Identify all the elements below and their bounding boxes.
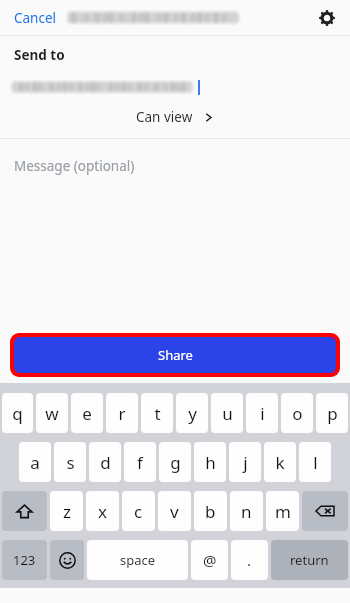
button[interactable]: t — [141, 393, 173, 433]
staticText: y — [188, 402, 197, 425]
staticText: o — [292, 402, 303, 425]
staticText: s — [66, 451, 75, 474]
button[interactable]: s — [54, 442, 86, 482]
staticText: n — [241, 500, 252, 523]
button[interactable]: x — [86, 491, 119, 531]
staticText: r — [118, 402, 126, 425]
button[interactable]: w — [36, 393, 68, 433]
button[interactable]: g — [159, 442, 191, 482]
staticText: Message (optional) — [14, 157, 135, 175]
button[interactable]: c — [122, 491, 155, 531]
button[interactable]: b — [194, 491, 227, 531]
staticText: m — [275, 500, 291, 523]
staticText: f — [137, 451, 143, 474]
button[interactable]: n — [230, 491, 263, 531]
button[interactable]: space — [87, 540, 188, 580]
button[interactable]: o — [281, 393, 313, 433]
button[interactable]: a — [19, 442, 51, 482]
button[interactable]: u — [211, 393, 243, 433]
staticText: c — [134, 500, 143, 523]
staticText: l — [313, 451, 318, 474]
button[interactable]: h — [194, 442, 226, 482]
button[interactable]: j — [229, 442, 261, 482]
staticText: Send to — [14, 46, 65, 64]
staticText: @ — [203, 550, 217, 570]
button[interactable]: . — [231, 540, 268, 580]
button[interactable]: i — [246, 393, 278, 433]
staticText: Share — [158, 346, 193, 364]
staticText: 123 — [13, 551, 36, 569]
button[interactable]: Cancel — [8, 5, 63, 31]
button[interactable]: Backspace — [302, 491, 348, 531]
staticText: return — [290, 551, 329, 569]
button[interactable]: m — [266, 491, 299, 531]
staticText: space — [120, 551, 156, 569]
button[interactable]: q — [2, 393, 33, 433]
button[interactable]: l — [299, 442, 331, 482]
button[interactable]: Can view — [128, 104, 222, 130]
staticText: j — [243, 451, 248, 474]
staticText: p — [327, 402, 338, 425]
button[interactable]: return — [271, 540, 348, 580]
button[interactable]: k — [264, 442, 296, 482]
staticText: v — [170, 500, 179, 523]
button[interactable]: @ — [191, 540, 228, 580]
staticText: t — [154, 402, 161, 425]
staticText: e — [82, 402, 92, 425]
button[interactable]: y — [176, 393, 208, 433]
button[interactable]: Message (optional) — [0, 139, 350, 327]
staticText: w — [45, 402, 59, 425]
staticText: a — [30, 451, 40, 474]
button[interactable]: d — [89, 442, 121, 482]
staticText: k — [275, 451, 285, 474]
button[interactable]: v — [158, 491, 191, 531]
button[interactable]: Settings — [314, 5, 340, 31]
staticText: i — [260, 402, 265, 425]
button[interactable]: f — [124, 442, 156, 482]
button[interactable]: Share — [14, 337, 336, 373]
staticText: b — [205, 500, 216, 523]
button[interactable]: Shift — [2, 491, 47, 531]
button[interactable]: r — [106, 393, 138, 433]
staticText: x — [98, 500, 107, 523]
button[interactable]: p — [316, 393, 348, 433]
staticText: g — [170, 451, 181, 474]
staticText: . — [247, 550, 252, 570]
button[interactable]: e — [71, 393, 103, 433]
button[interactable]: z — [50, 491, 83, 531]
button[interactable]: 123 — [2, 540, 47, 580]
staticText: u — [222, 402, 233, 425]
staticText: Can view — [136, 108, 193, 126]
staticText: h — [205, 451, 216, 474]
staticText: Cancel — [14, 9, 57, 27]
staticText: z — [63, 500, 71, 523]
button[interactable]: Emoji — [50, 540, 84, 580]
staticText: q — [12, 402, 23, 425]
staticText: d — [100, 451, 111, 474]
